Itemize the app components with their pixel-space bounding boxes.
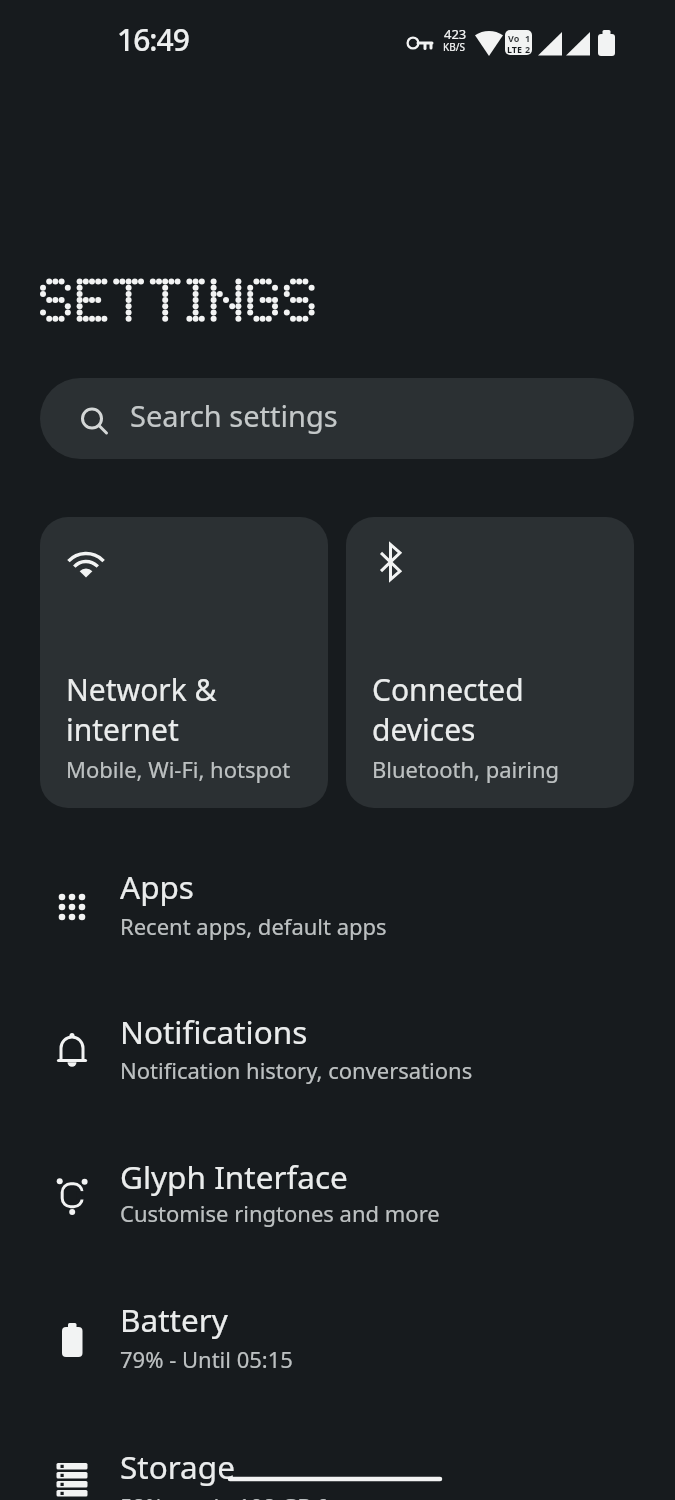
staticText: Glyph Interface — [120, 1155, 348, 1198]
button[interactable] — [0, 855, 675, 980]
button[interactable] — [0, 1000, 675, 1125]
staticText: Mobile, Wi-Fi, hotspot — [66, 754, 291, 784]
button[interactable] — [0, 1435, 675, 1500]
staticText: Notifications — [120, 1010, 308, 1053]
staticText: Network & internet — [66, 669, 217, 750]
staticText: 1 — [525, 32, 531, 44]
staticText: 16:49 — [117, 19, 189, 60]
staticText: Bluetooth, pairing — [372, 754, 560, 784]
staticText: 79% - Until 05:15 — [120, 1344, 293, 1374]
staticText: Connected devices — [372, 669, 524, 750]
staticText: Notification history, conversations — [120, 1055, 473, 1085]
staticText: 423 — [444, 25, 467, 43]
button[interactable] — [0, 1145, 675, 1270]
button[interactable]: Search settings — [40, 378, 634, 459]
staticText: Customise ringtones and more — [120, 1198, 440, 1228]
staticText: Search settings — [130, 396, 338, 435]
staticText: Vo — [508, 32, 520, 44]
staticText: Apps — [120, 865, 194, 908]
staticText: Recent apps, default apps — [120, 911, 387, 941]
staticText: 2 — [525, 43, 531, 55]
staticText: LTE — [507, 43, 523, 55]
button[interactable] — [0, 1288, 675, 1413]
button[interactable]: Network & internet — [40, 517, 328, 808]
staticText: Storage — [120, 1445, 235, 1488]
staticText: 58% used - 108 GB free — [120, 1491, 359, 1500]
staticText: Battery — [120, 1298, 228, 1341]
button[interactable]: Connected devices — [346, 517, 634, 808]
staticText: KB/S — [443, 40, 465, 54]
